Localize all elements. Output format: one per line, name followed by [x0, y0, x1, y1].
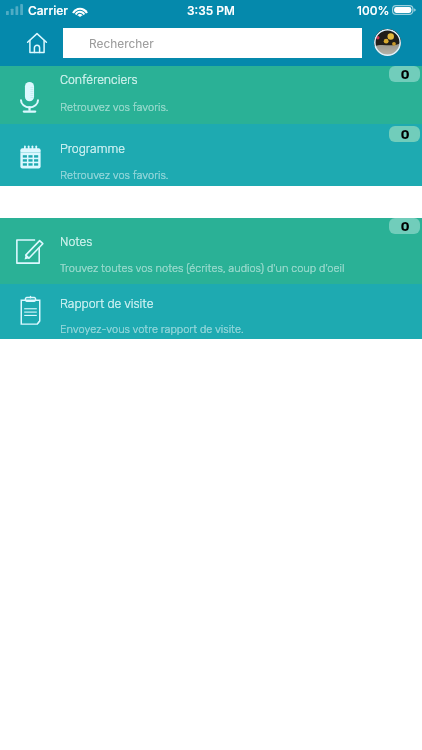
button[interactable]: Notifications: [389, 126, 420, 142]
staticText: Programme: [60, 141, 125, 156]
staticText: Trouvez toutes vos notes (écrites, audio…: [60, 262, 345, 275]
staticText: 0: [400, 126, 410, 142]
staticText: 0: [400, 66, 410, 82]
button[interactable]: Notifications: [389, 218, 420, 234]
staticText: Envoyez-vous votre rapport de visite.: [60, 323, 244, 336]
button[interactable]: [0, 284, 422, 339]
button[interactable]: Accueil: [17, 23, 57, 63]
button[interactable]: Profil: [368, 22, 406, 62]
button[interactable]: Rechercher: [63, 28, 362, 58]
staticText: 3:35 PM: [187, 3, 235, 18]
staticText: 0: [400, 218, 410, 234]
button[interactable]: Notifications: [389, 66, 420, 82]
staticText: Rechercher: [89, 36, 154, 50]
staticText: Retrouvez vos favoris.: [60, 101, 169, 114]
staticText: 100%: [357, 3, 390, 18]
staticText: Retrouvez vos favoris.: [60, 169, 169, 182]
staticText: Carrier: [28, 3, 68, 18]
button[interactable]: [0, 66, 422, 124]
staticText: Conférenciers: [60, 72, 138, 87]
staticText: Notes: [60, 234, 93, 249]
button[interactable]: [0, 218, 422, 284]
button[interactable]: [0, 124, 422, 186]
staticText: Rapport de visite: [60, 296, 154, 311]
